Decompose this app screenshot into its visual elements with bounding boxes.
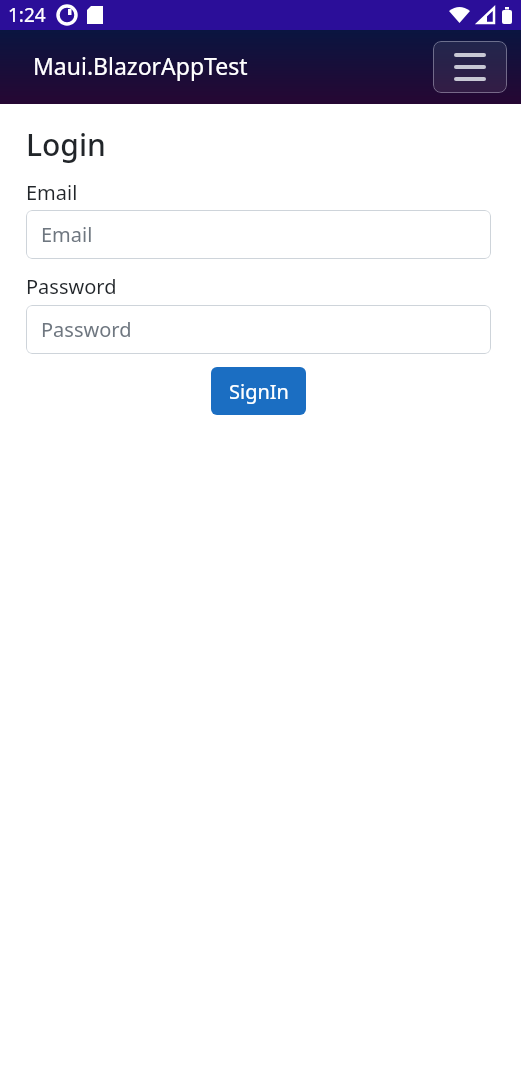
button[interactable]: SignIn [211, 367, 306, 415]
button[interactable]: Password [26, 305, 491, 354]
staticText: Maui.BlazorAppTest [33, 50, 248, 81]
staticText: SignIn [229, 378, 289, 405]
staticText: Email [41, 221, 93, 248]
staticText: Email [26, 179, 78, 206]
button[interactable] [433, 41, 507, 93]
staticText: Password [41, 316, 132, 343]
button[interactable]: Email [26, 210, 491, 259]
staticText: Login [26, 124, 106, 165]
staticText: 1:24 [8, 2, 46, 28]
staticText: Password [26, 273, 117, 300]
